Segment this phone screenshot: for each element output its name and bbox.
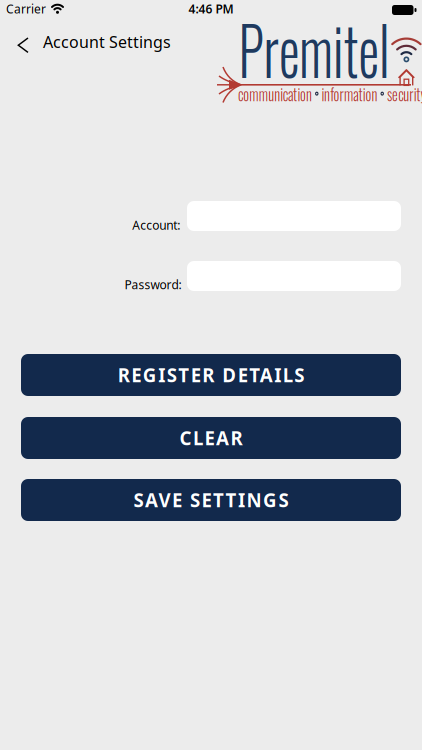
staticText: communication: [238, 81, 324, 106]
staticText: 4:46 PM: [188, 1, 233, 17]
staticText: information: [335, 81, 400, 106]
staticText: SAVE SETTINGS: [133, 488, 288, 512]
staticText: CLEAR: [179, 426, 242, 450]
staticText: Account Settings: [43, 31, 171, 52]
staticText: Password:: [125, 277, 182, 292]
staticText: REGISTER DETAILS: [118, 363, 304, 387]
staticText: Premitel: [238, 0, 422, 97]
button[interactable]: SAVE SETTINGS: [21, 479, 401, 521]
button[interactable]: CLEAR: [21, 417, 401, 459]
staticText: security: [411, 81, 422, 106]
staticText: Carrier: [6, 1, 46, 17]
button[interactable]: Back: [11, 31, 35, 59]
button[interactable]: REGISTER DETAILS: [21, 354, 401, 396]
staticText: Account:: [132, 217, 180, 233]
